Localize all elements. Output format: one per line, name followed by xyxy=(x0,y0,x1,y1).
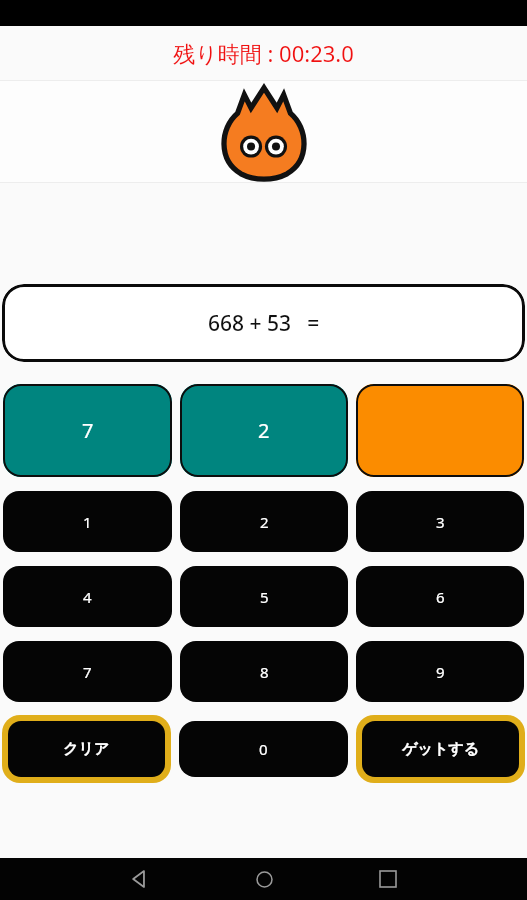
staticText: 668 + 53 = xyxy=(208,309,320,338)
staticText: 8 xyxy=(260,662,269,682)
staticText: 残り時間 : 00:23.0 xyxy=(173,38,354,68)
button[interactable]: 3 xyxy=(356,491,524,552)
button[interactable]: 1 xyxy=(3,491,172,552)
button[interactable]: クリア xyxy=(2,715,171,783)
staticText: 7 xyxy=(83,662,92,682)
button[interactable]: 8 xyxy=(180,641,348,702)
button[interactable]: ゲットする xyxy=(356,715,525,783)
button[interactable]: Recent apps xyxy=(371,862,405,896)
staticText: 2 xyxy=(260,512,269,532)
staticText: 4 xyxy=(83,587,92,607)
staticText: 3 xyxy=(436,512,445,532)
button[interactable]: 2 xyxy=(180,384,348,477)
button[interactable]: 4 xyxy=(3,566,172,627)
button[interactable]: 6 xyxy=(356,566,524,627)
button[interactable]: 668 + 53 = xyxy=(2,284,525,362)
staticText: クリア xyxy=(63,740,110,759)
staticText: 9 xyxy=(436,662,445,682)
button[interactable]: 5 xyxy=(180,566,348,627)
button[interactable]: 7 xyxy=(3,641,172,702)
staticText: 6 xyxy=(436,587,445,607)
staticText: 1 xyxy=(83,512,92,532)
button[interactable]: Answer option xyxy=(356,384,524,477)
staticText: 7 xyxy=(82,417,94,444)
button[interactable]: 9 xyxy=(356,641,524,702)
staticText: 2 xyxy=(258,417,270,444)
staticText: ゲットする xyxy=(402,740,479,759)
other: Flame character xyxy=(216,85,312,179)
button[interactable]: Back xyxy=(123,862,157,896)
button[interactable]: 7 xyxy=(3,384,172,477)
button[interactable]: 2 xyxy=(180,491,348,552)
staticText: 0 xyxy=(259,739,268,759)
staticText: 5 xyxy=(260,587,269,607)
button[interactable]: 0 xyxy=(179,721,348,777)
button[interactable]: Home xyxy=(247,862,281,896)
